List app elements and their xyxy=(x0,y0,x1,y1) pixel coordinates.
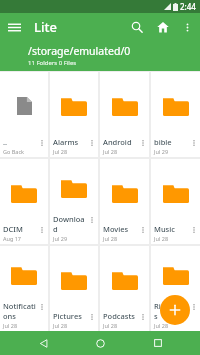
staticText: DCIM xyxy=(3,224,23,234)
button[interactable]: Movies xyxy=(100,159,149,244)
button[interactable]: More options for bible xyxy=(189,137,199,149)
button[interactable]: Music xyxy=(151,159,200,244)
button[interactable]: Home xyxy=(150,14,176,40)
button[interactable]: More options for Music xyxy=(189,224,199,236)
staticText: Jul 28 xyxy=(53,322,68,329)
button[interactable]: More options for Movies xyxy=(138,224,148,236)
button[interactable]: bible xyxy=(151,72,200,157)
button[interactable]: More options for Notifications xyxy=(37,301,47,313)
button[interactable]: More options for Alarms xyxy=(87,137,97,149)
button[interactable]: More options for Download xyxy=(87,214,97,226)
button[interactable]: More options for Android xyxy=(138,137,148,149)
button[interactable]: More options xyxy=(176,16,198,38)
button[interactable]: DCIM xyxy=(0,159,48,244)
staticText: Jul 29 xyxy=(154,148,169,155)
staticText: Ringtones xyxy=(154,301,189,321)
staticText: bible xyxy=(154,137,172,147)
staticText: Lite xyxy=(34,18,57,36)
staticText: Notifications xyxy=(3,301,37,321)
staticText: Podcasts xyxy=(103,311,135,321)
staticText: Jul 28 xyxy=(154,322,169,329)
button[interactable]: More options for Podcasts xyxy=(138,311,148,323)
staticText: Jul 28 xyxy=(103,148,118,155)
button[interactable]: Notifications xyxy=(0,246,48,331)
staticText: /storage/emulated/0 xyxy=(28,44,131,58)
button[interactable]: More options for Ringtones xyxy=(189,301,199,313)
staticText: Movies xyxy=(103,224,129,234)
button[interactable]: More options for Pictures xyxy=(87,311,97,323)
button[interactable]: Podcasts xyxy=(100,246,149,331)
button[interactable]: More options for .. xyxy=(37,137,47,149)
button[interactable]: Ringtones xyxy=(151,246,200,331)
staticText: Jul 28 xyxy=(53,148,68,155)
staticText: Alarms xyxy=(53,137,79,147)
button[interactable]: Back xyxy=(28,331,58,355)
staticText: Android xyxy=(103,137,132,147)
staticText: Pictures xyxy=(53,311,82,321)
staticText: Jul 28 xyxy=(103,235,118,242)
staticText: Aug 17 xyxy=(3,235,22,242)
button[interactable]: Alarms xyxy=(50,72,98,157)
staticText: .. xyxy=(3,137,8,147)
staticText: Download xyxy=(53,214,87,234)
staticText: Jul 28 xyxy=(103,322,118,329)
button[interactable]: Download xyxy=(50,159,98,244)
button[interactable]: Add xyxy=(160,295,190,325)
button[interactable]: More options for DCIM xyxy=(37,224,47,236)
staticText: Go Back xyxy=(3,148,24,155)
staticText: 2:44 xyxy=(180,1,196,12)
button[interactable]: Pictures xyxy=(50,246,98,331)
staticText: 11 Folders 0 Files xyxy=(28,59,77,67)
button[interactable]: Search xyxy=(124,14,150,40)
button[interactable]: .. xyxy=(0,72,48,157)
button[interactable]: Home xyxy=(85,331,115,355)
button[interactable]: Menu xyxy=(0,13,28,41)
staticText: Jul 28 xyxy=(3,322,18,329)
staticText: Music xyxy=(154,224,175,234)
staticText: Jul 29 xyxy=(53,235,68,242)
button[interactable]: Recents xyxy=(143,331,173,355)
button[interactable]: Android xyxy=(100,72,149,157)
staticText: Jul 28 xyxy=(154,235,169,242)
